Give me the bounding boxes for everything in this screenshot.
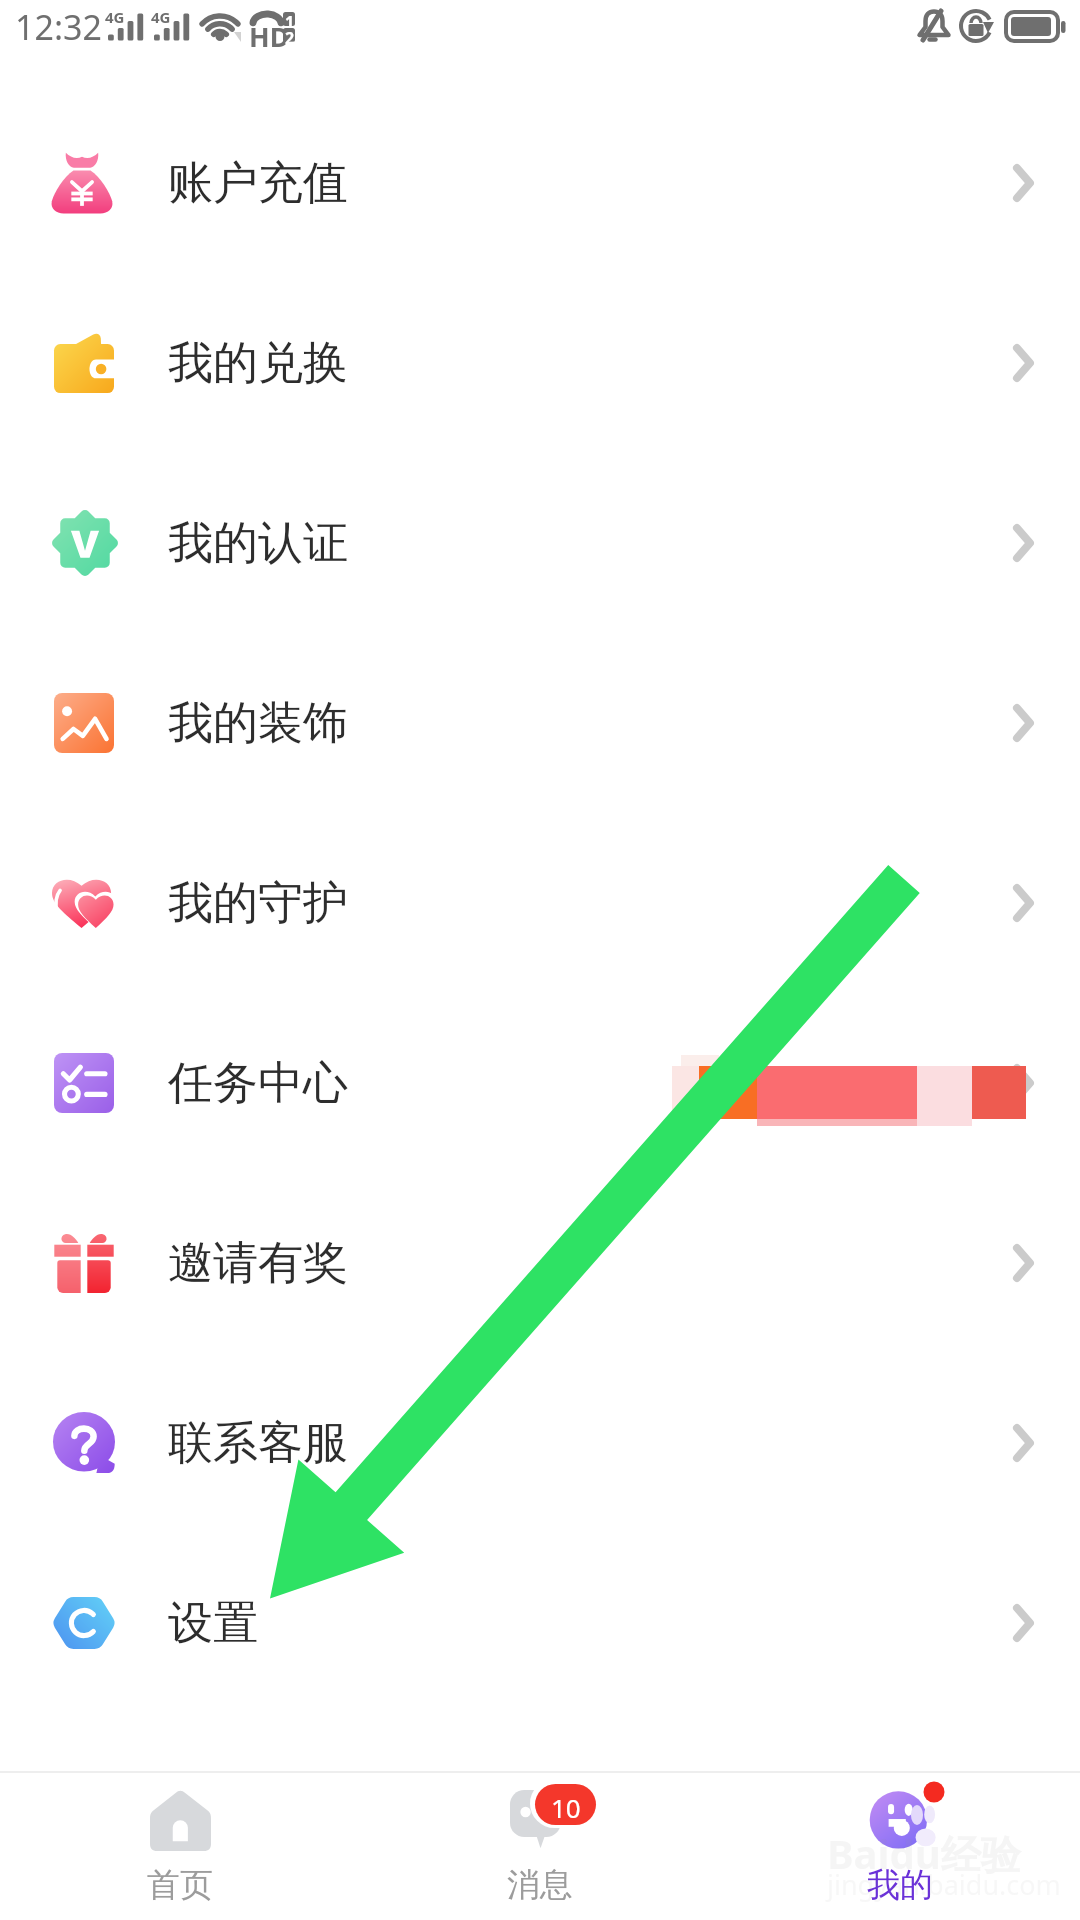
staticText: 联系客服 xyxy=(168,1415,348,1472)
staticText: 我的兑换 xyxy=(168,335,348,392)
button[interactable]: 邀请有奖 xyxy=(0,1173,1080,1353)
staticText: Baidu经验 xyxy=(827,1826,1021,1881)
staticText: 我的认证 xyxy=(168,515,348,572)
staticText: 我的 xyxy=(867,1864,933,1906)
button[interactable]: 我的 xyxy=(720,1773,1080,1920)
button[interactable]: 联系客服 xyxy=(0,1353,1080,1533)
button[interactable]: 我的守护 xyxy=(0,813,1080,993)
staticText: 设置 xyxy=(168,1595,258,1652)
staticText: 我的装饰 xyxy=(168,695,348,752)
staticText: 2 xyxy=(285,27,295,49)
staticText: 1 xyxy=(285,11,295,33)
staticText: 首页 xyxy=(147,1864,213,1906)
button[interactable]: 我的装饰 xyxy=(0,633,1080,813)
other: Annotation arrow xyxy=(0,0,1080,1920)
staticText: 4G xyxy=(105,7,125,27)
button[interactable]: 账户充值 xyxy=(0,93,1080,273)
staticText: HD xyxy=(249,18,290,55)
staticText: 10 xyxy=(551,1790,581,1825)
button[interactable]: 消息 xyxy=(360,1773,720,1920)
button[interactable]: 任务中心 xyxy=(0,993,1080,1173)
staticText: 我的守护 xyxy=(168,875,348,932)
staticText: 4G xyxy=(151,7,171,27)
button[interactable]: 首页 xyxy=(0,1773,360,1920)
button[interactable]: 我的兑换 xyxy=(0,273,1080,453)
button[interactable]: 我的认证 xyxy=(0,453,1080,633)
staticText: 消息 xyxy=(507,1864,573,1906)
staticText: jingyan.baidu.com xyxy=(827,1866,1061,1903)
button[interactable]: 设置 xyxy=(0,1533,1080,1713)
staticText: 邀请有奖 xyxy=(168,1235,348,1292)
staticText: 12:32 xyxy=(15,4,102,50)
staticText: 账户充值 xyxy=(168,155,348,212)
staticText: 任务中心 xyxy=(168,1055,348,1112)
